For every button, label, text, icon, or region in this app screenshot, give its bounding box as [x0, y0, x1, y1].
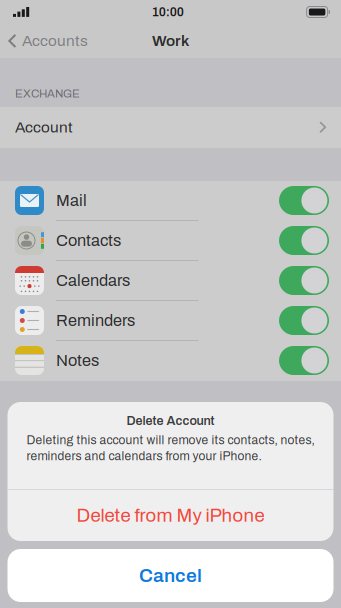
staticText: Notes: [56, 352, 99, 369]
button[interactable]: Reminders: [0, 301, 341, 341]
button[interactable]: Cancel: [7, 549, 333, 602]
button[interactable]: Notes: [0, 341, 341, 381]
staticText: EXCHANGE: [15, 87, 80, 100]
staticText: Reminders: [56, 312, 135, 329]
button[interactable]: Accounts: [0, 24, 96, 58]
staticText: Delete Account: [126, 414, 214, 428]
staticText: Work: [152, 33, 189, 49]
staticText: Account: [15, 119, 73, 136]
button[interactable]: Account: [0, 107, 341, 148]
staticText: Cancel: [139, 565, 202, 586]
button[interactable]: Calendars: [0, 261, 341, 301]
staticText: Mail: [56, 192, 87, 209]
staticText: Delete from My iPhone: [76, 505, 264, 526]
button[interactable]: Contacts: [0, 221, 341, 261]
staticText: Calendars: [56, 272, 130, 289]
staticText: 10:00: [152, 5, 184, 19]
staticText: Accounts: [22, 33, 88, 49]
staticText: Deleting this account will remove its co…: [26, 434, 314, 463]
button[interactable]: Mail: [0, 181, 341, 221]
button[interactable]: Delete from My iPhone: [7, 490, 333, 541]
staticText: Contacts: [56, 232, 121, 249]
